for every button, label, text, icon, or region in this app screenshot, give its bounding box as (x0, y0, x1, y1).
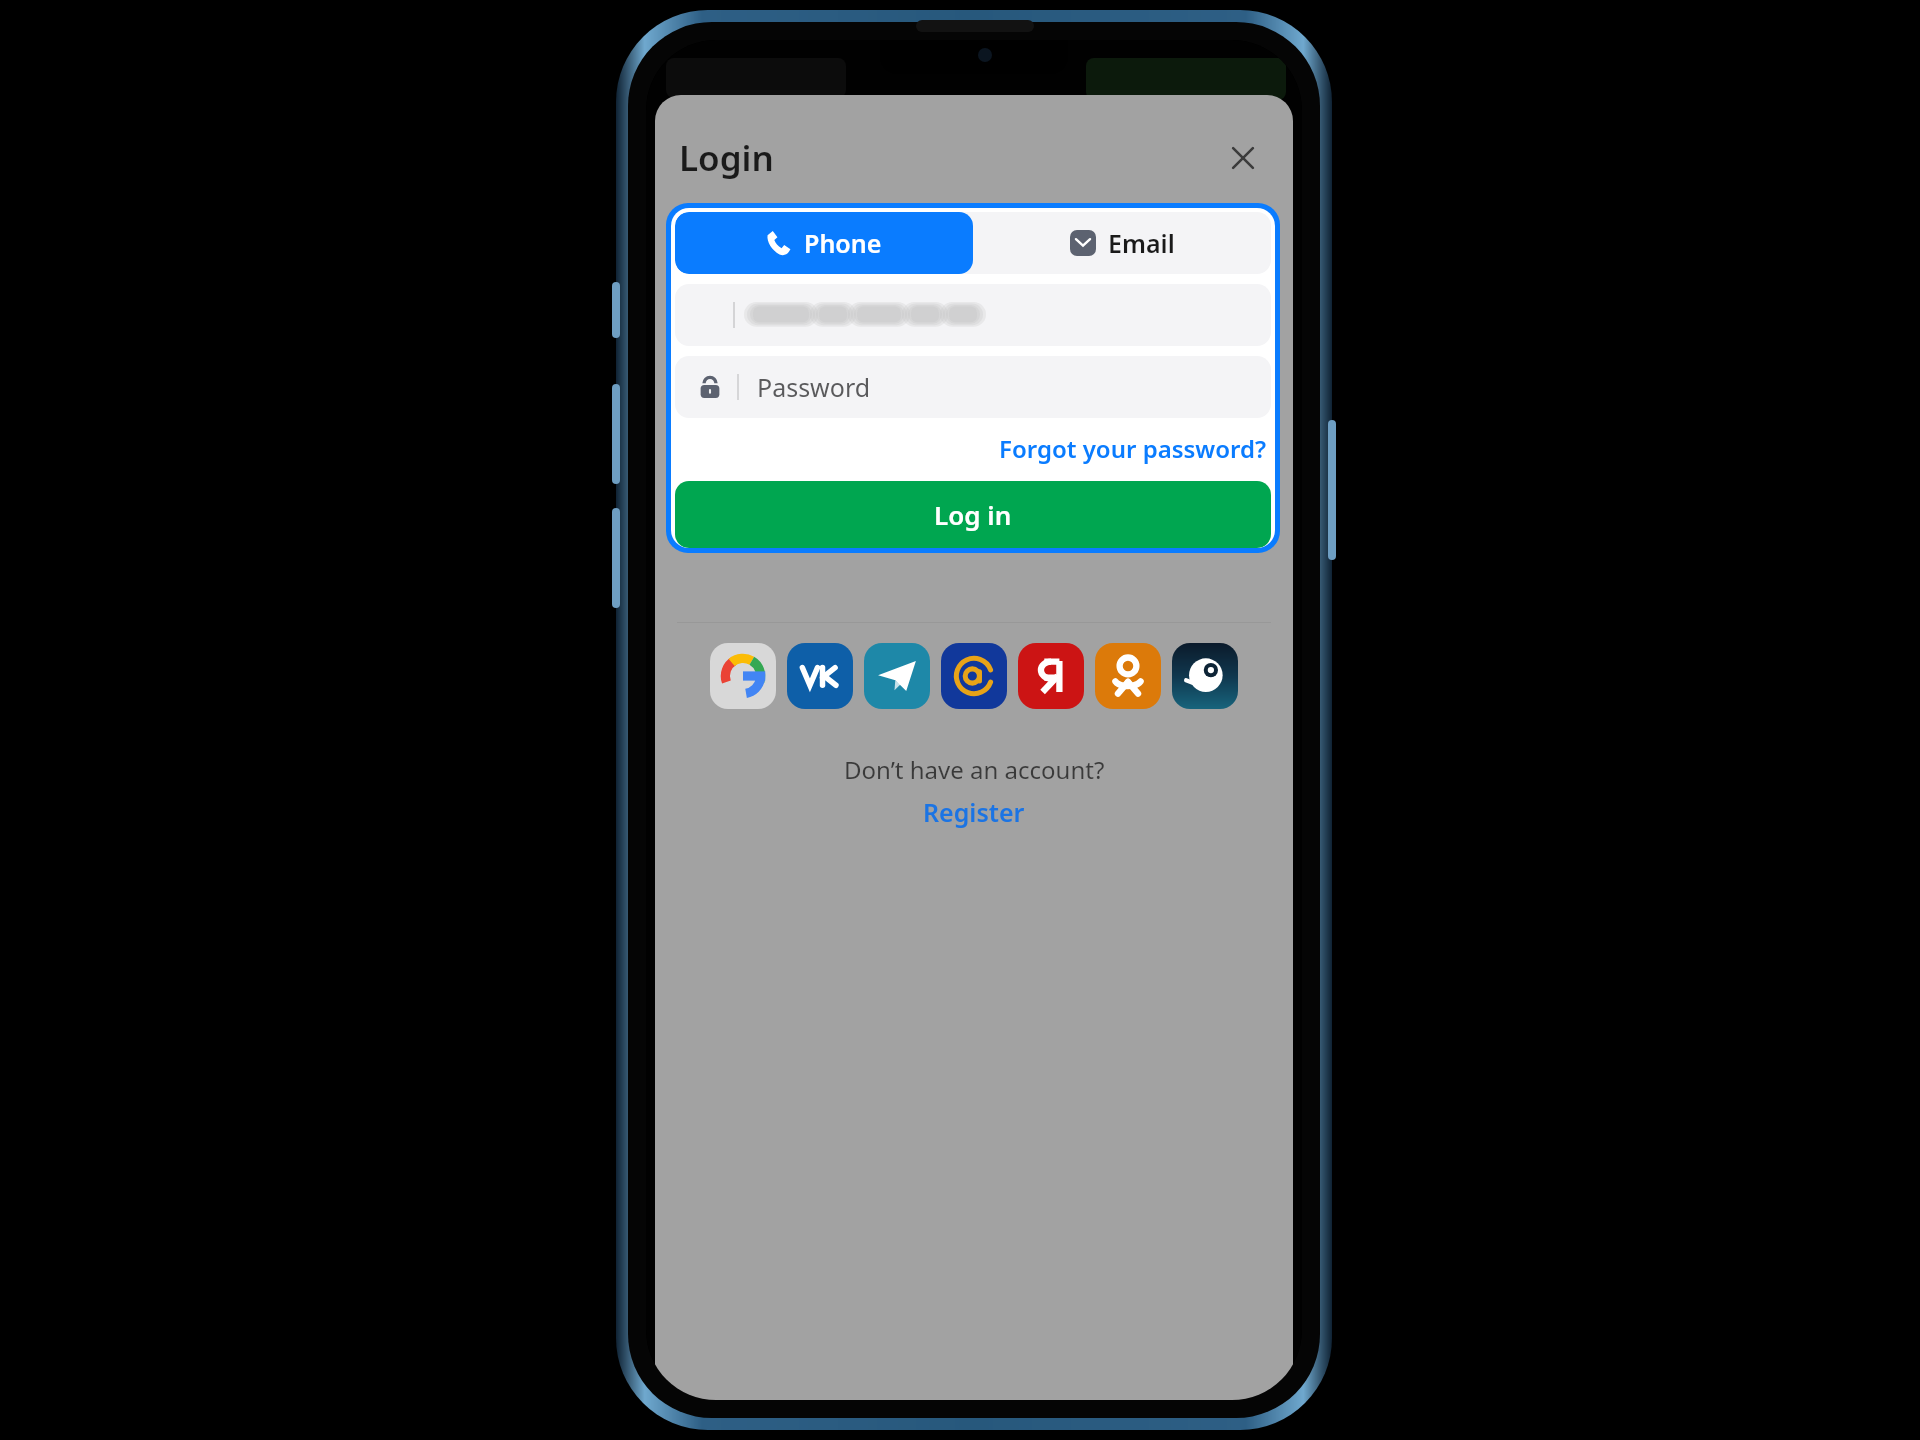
staticText: Log in (934, 497, 1012, 532)
button[interactable]: Close (1217, 132, 1269, 184)
button[interactable]: Sign in with Yandex (1018, 643, 1084, 709)
staticText: Register (923, 795, 1025, 829)
button[interactable]: Sign in with Odnoklassniki (1095, 643, 1161, 709)
button[interactable]: Forgot your password? (991, 430, 1275, 467)
button[interactable]: Log in (675, 481, 1271, 548)
button[interactable] (675, 284, 1271, 346)
staticText: Email (1108, 226, 1175, 260)
button[interactable]: Register (913, 792, 1035, 832)
button[interactable]: Sign in with Mail.ru (941, 643, 1007, 709)
button[interactable]: Sign in with Steam (1172, 643, 1238, 709)
button[interactable]: Sign in with Google (710, 643, 776, 709)
staticText: Forgot your password? (999, 432, 1267, 465)
button[interactable]: Email (973, 212, 1271, 274)
button[interactable]: Sign in with Telegram (864, 643, 930, 709)
staticText: Login (679, 134, 774, 182)
staticText: Password (757, 370, 871, 404)
staticText: Phone (804, 226, 882, 260)
staticText: Don’t have an account? (844, 753, 1105, 786)
button[interactable]: Sign in with VK (787, 643, 853, 709)
button[interactable]: Password (675, 356, 1271, 418)
button[interactable]: Phone (675, 212, 973, 274)
